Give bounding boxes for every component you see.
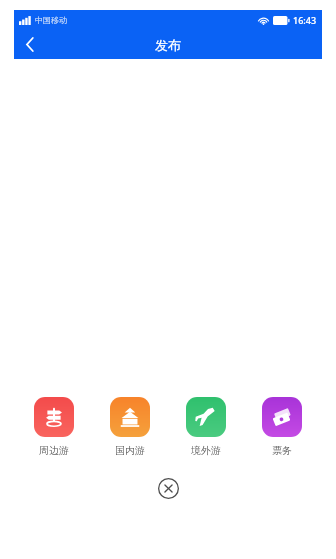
staticText: 发布 xyxy=(155,37,181,53)
button[interactable]: 境外游 xyxy=(178,397,234,457)
button[interactable]: 国内游 xyxy=(102,397,158,457)
staticText: 16:43 xyxy=(293,14,317,26)
button[interactable]: 票务 xyxy=(254,397,310,457)
staticText: 国内游 xyxy=(115,444,145,457)
button[interactable]: Back xyxy=(14,30,46,59)
staticText: 票务 xyxy=(272,444,292,457)
staticText: 周边游 xyxy=(39,444,69,457)
staticText: 境外游 xyxy=(191,444,221,457)
button[interactable]: Close xyxy=(151,471,185,505)
staticText: 中国移动 xyxy=(35,15,67,25)
button[interactable]: 周边游 xyxy=(26,397,82,457)
